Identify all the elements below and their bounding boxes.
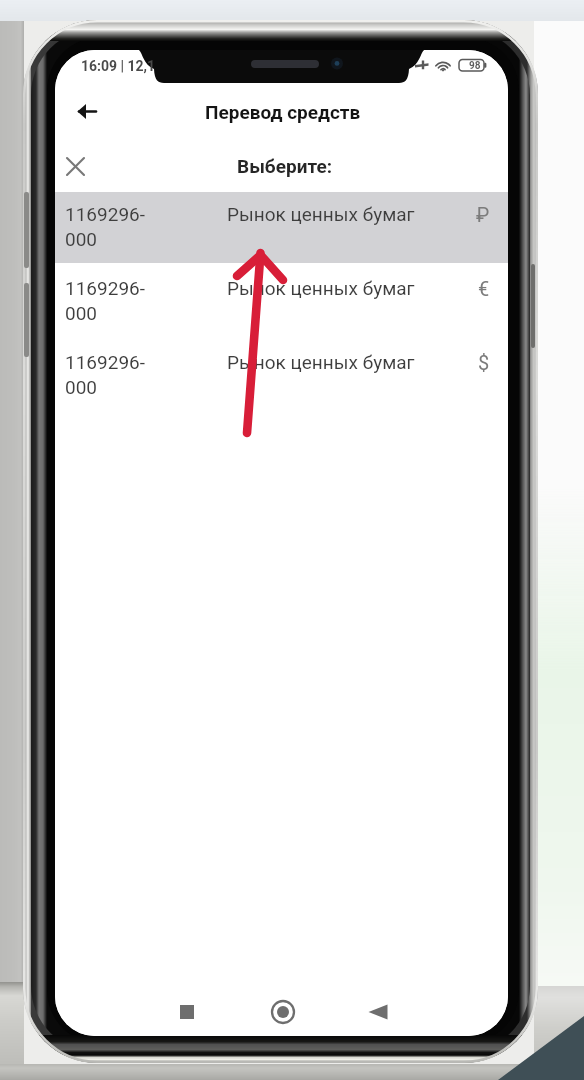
button[interactable]: Back: [64, 89, 108, 133]
staticText: $: [478, 351, 490, 374]
staticText: 1169296- 000: [65, 203, 145, 251]
button[interactable]: 1169296- 000: [55, 266, 508, 340]
staticText: Рынок ценных бумаг: [227, 351, 415, 373]
staticText: ₽: [476, 203, 490, 226]
staticText: Рынок ценных бумаг: [227, 203, 415, 225]
button[interactable]: Back: [363, 997, 393, 1027]
button[interactable]: 1169296- 000: [55, 340, 508, 414]
button[interactable]: Home: [266, 995, 300, 1029]
button[interactable]: 1169296- 000: [55, 192, 508, 266]
staticText: Рынок ценных бумаг: [227, 277, 415, 299]
staticText: 16:09 | 12,1: [81, 58, 156, 74]
staticText: Перевод средств: [205, 101, 361, 123]
button[interactable]: Recent apps: [172, 997, 202, 1027]
staticText: 98: [469, 60, 481, 72]
button[interactable]: Close: [55, 146, 95, 186]
staticText: 1169296- 000: [65, 277, 145, 325]
staticText: 1169296- 000: [65, 351, 145, 399]
staticText: Выберите:: [237, 155, 333, 177]
staticText: €: [478, 277, 490, 300]
